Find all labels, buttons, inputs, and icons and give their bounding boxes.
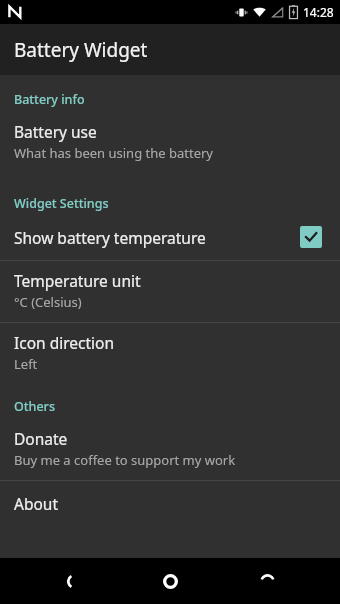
staticText: About bbox=[14, 493, 58, 514]
button[interactable]: Home bbox=[147, 558, 193, 604]
staticText: Others bbox=[14, 398, 55, 415]
staticText: What has been using the battery bbox=[14, 144, 213, 162]
button[interactable]: Temperature unit bbox=[0, 261, 340, 322]
button[interactable]: Back bbox=[51, 558, 97, 604]
staticText: Icon direction bbox=[14, 332, 115, 353]
staticText: Battery info bbox=[14, 91, 85, 108]
staticText: 14:28 bbox=[303, 4, 334, 20]
staticText: Battery Widget bbox=[14, 37, 148, 63]
other: Show battery temperature checkbox bbox=[300, 226, 322, 248]
button[interactable]: About bbox=[0, 481, 340, 526]
button[interactable]: Donate bbox=[0, 419, 340, 480]
staticText: Temperature unit bbox=[14, 270, 141, 291]
button[interactable]: Show battery temperature bbox=[0, 216, 340, 260]
staticText: Buy me a coffee to support my work bbox=[14, 451, 236, 469]
staticText: Donate bbox=[14, 428, 68, 449]
button[interactable]: Recents bbox=[244, 558, 290, 604]
button[interactable]: Battery use bbox=[0, 112, 340, 173]
staticText: Battery use bbox=[14, 121, 97, 142]
staticText: °C (Celsius) bbox=[14, 293, 82, 311]
staticText: Widget Settings bbox=[14, 195, 109, 212]
button[interactable]: Icon direction bbox=[0, 323, 340, 384]
staticText: Show battery temperature bbox=[14, 227, 300, 248]
staticText: Left bbox=[14, 355, 38, 373]
